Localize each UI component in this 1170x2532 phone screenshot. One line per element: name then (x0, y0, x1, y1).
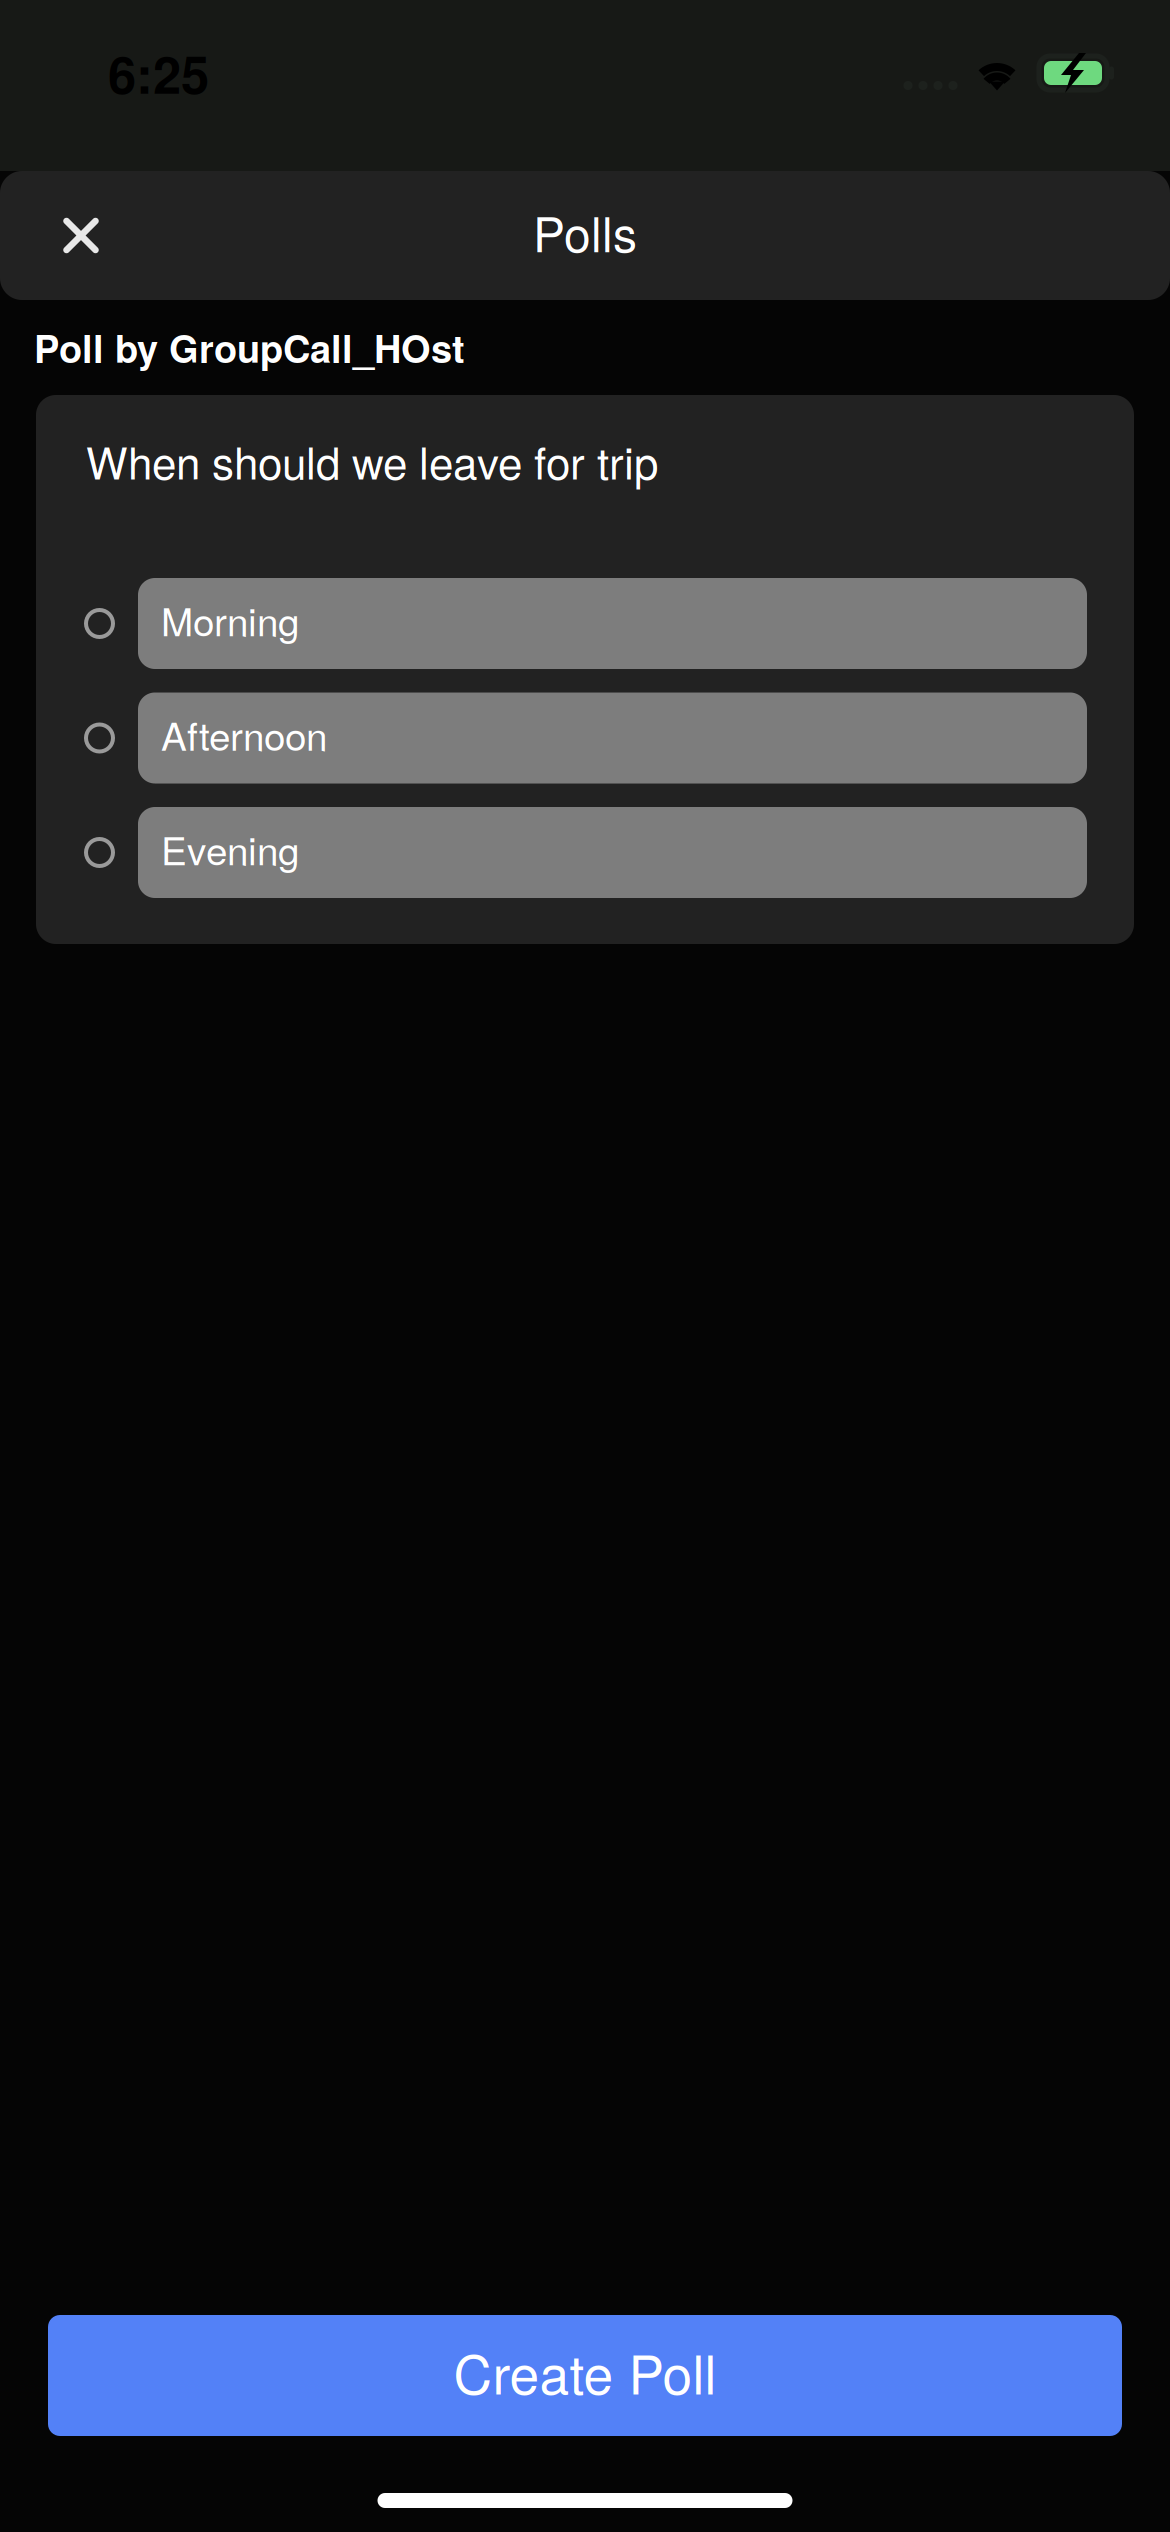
staticText: When should we leave for trip (86, 429, 658, 492)
staticText: Create Poll (453, 2333, 716, 2410)
button[interactable]: Evening (36, 807, 1134, 898)
button[interactable]: Afternoon (36, 692, 1134, 783)
staticText: Morning (161, 592, 299, 647)
button[interactable]: Morning (36, 578, 1134, 669)
button[interactable]: Close (0, 171, 143, 300)
staticText: Afternoon (161, 706, 327, 762)
staticText: 6:25 (108, 37, 209, 109)
staticText: Evening (161, 821, 299, 876)
button[interactable]: Create Poll (48, 2315, 1122, 2436)
staticText: Polls (533, 197, 637, 266)
staticText: Poll by GroupCall_HOst (34, 320, 465, 375)
